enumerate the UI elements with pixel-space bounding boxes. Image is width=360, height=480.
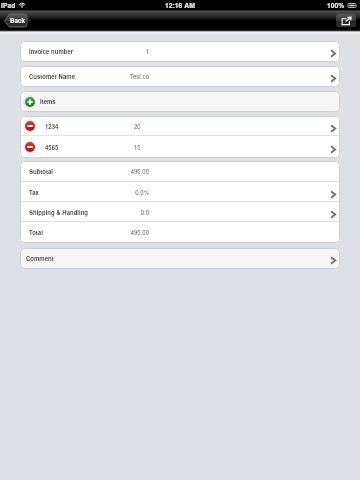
staticText: 0.0% bbox=[20, 188, 149, 197]
staticText: 0.0 bbox=[20, 208, 149, 217]
staticText: Shipping & Handling bbox=[29, 208, 89, 217]
button[interactable]: 4565 bbox=[20, 136, 340, 158]
staticText: Test co bbox=[20, 72, 149, 81]
button[interactable]: Subtotal bbox=[20, 161, 340, 182]
staticText: 12:16 AM bbox=[165, 0, 195, 10]
staticText: iPad bbox=[1, 0, 16, 10]
button[interactable]: Shipping & Handling bbox=[20, 202, 340, 222]
button[interactable]: Customer Name bbox=[20, 66, 340, 87]
staticText: 100% bbox=[327, 0, 345, 10]
button[interactable]: Total bbox=[20, 222, 340, 243]
staticText: Total bbox=[29, 228, 43, 237]
button[interactable]: Share bbox=[336, 14, 356, 27]
staticText: Comment bbox=[26, 254, 54, 263]
staticText: 495.00 bbox=[20, 167, 149, 176]
button[interactable]: Invoice number bbox=[20, 41, 340, 62]
staticText: 15 bbox=[134, 143, 141, 152]
staticText: 1 bbox=[20, 47, 149, 56]
button[interactable]: Items bbox=[20, 91, 340, 112]
staticText: 495.00 bbox=[20, 228, 149, 237]
button[interactable]: Tax bbox=[20, 182, 340, 202]
button[interactable]: Comment bbox=[20, 248, 340, 269]
staticText: 20 bbox=[134, 122, 141, 131]
staticText: Items bbox=[40, 97, 56, 106]
staticText: 1234 bbox=[45, 122, 59, 131]
staticText: Invoice number bbox=[29, 47, 74, 56]
button[interactable]: 1234 bbox=[20, 116, 340, 136]
staticText: Customer Name bbox=[29, 72, 76, 81]
staticText: Subtotal bbox=[29, 167, 53, 176]
staticText: Tax bbox=[29, 188, 39, 197]
button[interactable]: Back bbox=[4, 14, 27, 27]
staticText: Back bbox=[10, 16, 25, 25]
staticText: 4565 bbox=[45, 143, 59, 152]
